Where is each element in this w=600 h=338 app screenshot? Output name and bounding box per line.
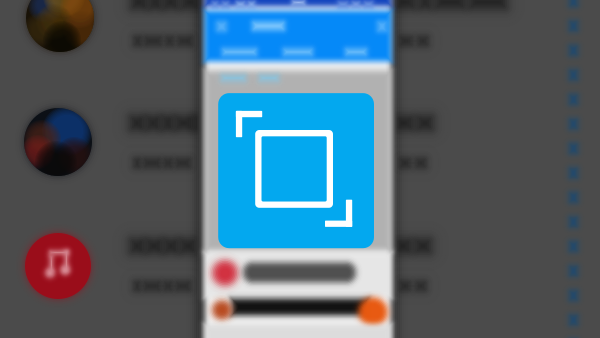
button[interactable]: Screen capture — [0, 0, 600, 338]
